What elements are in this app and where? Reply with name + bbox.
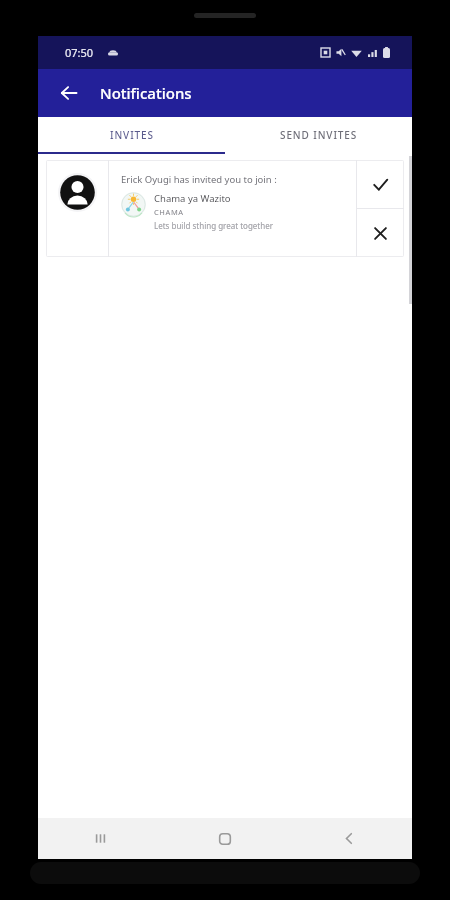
button[interactable]: Back [287, 818, 412, 859]
button[interactable]: INVITES [38, 117, 225, 152]
staticText: SEND INVITES [280, 128, 358, 142]
button[interactable]: Erick Oyugi has invited you to join : [46, 160, 404, 257]
staticText: 07:50 [65, 45, 94, 60]
staticText: Notifications [100, 83, 192, 103]
button[interactable]: Decline invite [357, 209, 404, 257]
staticText: CHAMA [154, 207, 184, 217]
button[interactable]: Recent apps [38, 818, 162, 859]
staticText: Chama ya Wazito [154, 192, 231, 205]
staticText: INVITES [110, 128, 154, 142]
staticText: Lets build sthing great together [154, 220, 274, 231]
staticText: Erick Oyugi has invited you to join : [121, 173, 277, 186]
button[interactable]: Back [52, 76, 86, 110]
button[interactable]: Accept invite [357, 160, 404, 208]
button[interactable]: SEND INVITES [225, 117, 412, 152]
button[interactable]: Home [162, 818, 287, 859]
